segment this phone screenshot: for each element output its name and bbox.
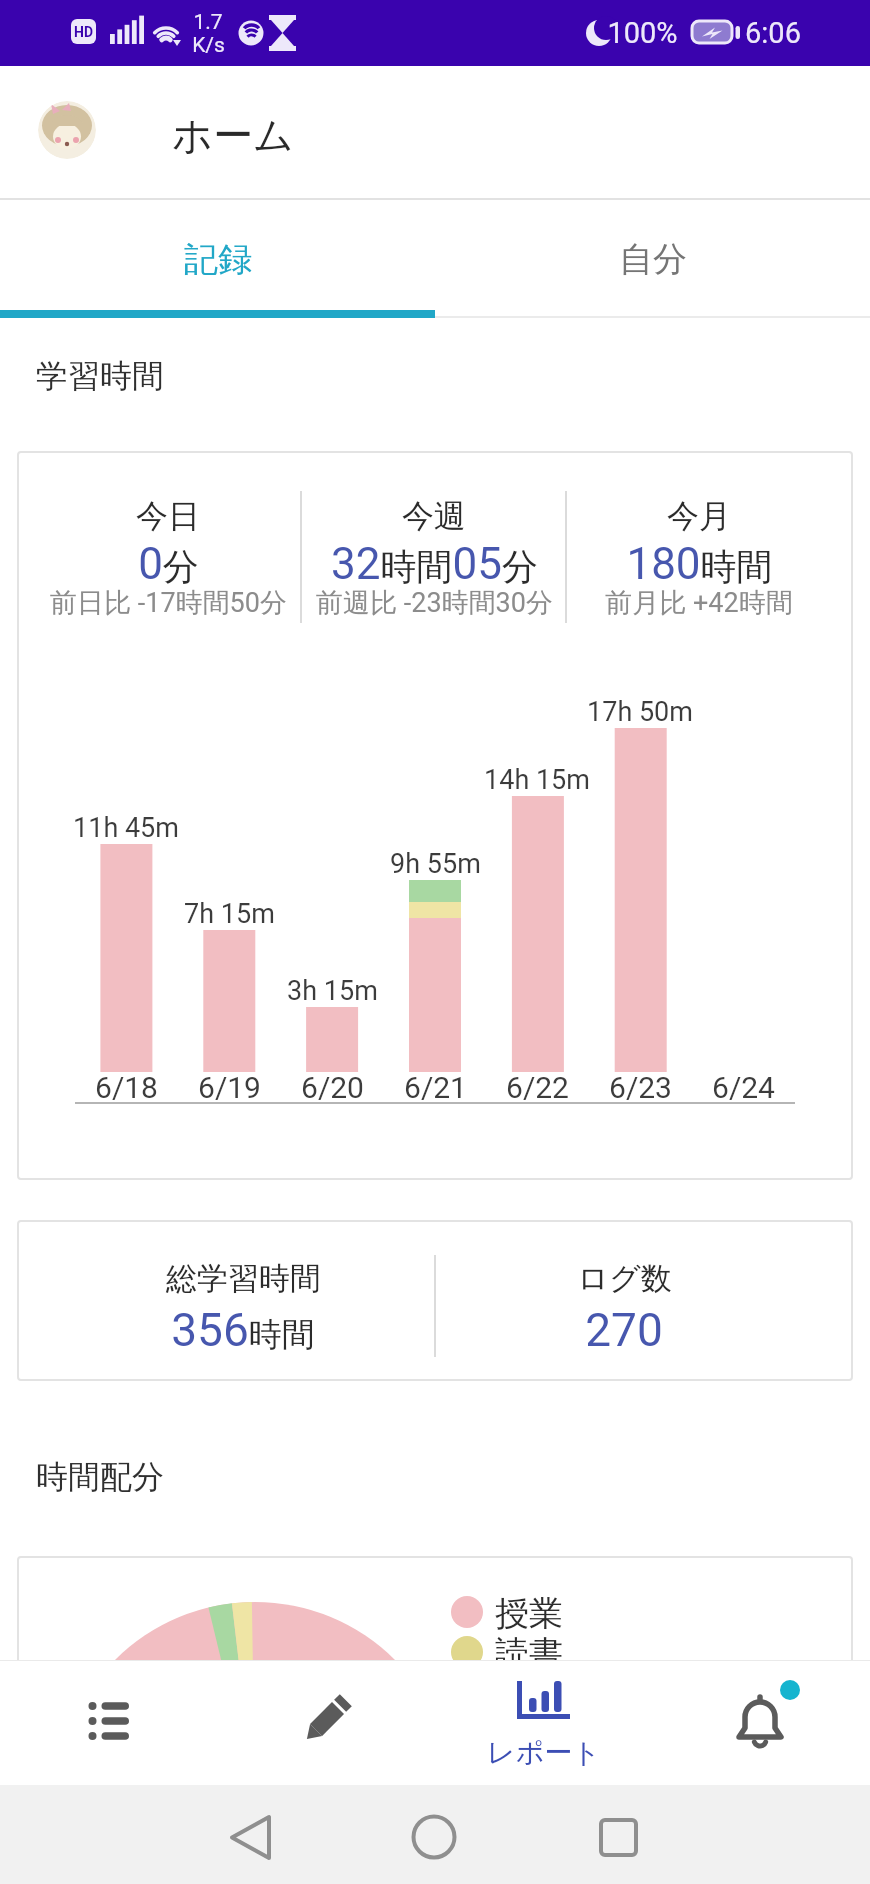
staticText: 授業 xyxy=(495,1592,563,1632)
staticText: 270 xyxy=(585,1303,663,1357)
staticText: 6/21 xyxy=(404,1070,467,1105)
staticText: K/s xyxy=(192,33,225,57)
button[interactable] xyxy=(0,1660,217,1785)
staticText: 前月比 +42時間 xyxy=(605,586,793,620)
staticText: 14h 15m xyxy=(484,764,590,796)
staticText: 180時間 xyxy=(626,538,773,590)
staticText: 学習時間 xyxy=(36,356,164,396)
staticText: 11h 45m xyxy=(73,812,179,844)
staticText: 6/23 xyxy=(609,1070,672,1105)
staticText: 記録 xyxy=(184,238,252,281)
staticText: 総学習時間 xyxy=(166,1259,321,1298)
staticText: 17h 50m xyxy=(587,696,693,728)
button[interactable] xyxy=(652,1660,870,1785)
staticText: 6/20 xyxy=(301,1070,364,1105)
staticText: 6/22 xyxy=(506,1070,569,1105)
staticText: 356時間 xyxy=(171,1303,315,1357)
staticText: 32時間05分 xyxy=(331,538,538,590)
staticText: 読書 xyxy=(495,1632,563,1672)
staticText: 今週 xyxy=(402,496,466,536)
staticText: 6/18 xyxy=(95,1070,158,1105)
staticText: 前週比 -23時間30分 xyxy=(316,586,553,620)
staticText: 1.7 xyxy=(193,10,223,34)
staticText: 今日 xyxy=(136,496,200,536)
button[interactable] xyxy=(217,1660,435,1785)
staticText: ログ数 xyxy=(577,1259,672,1298)
staticText: 3h 15m xyxy=(287,975,378,1007)
button[interactable]: 記録 xyxy=(0,200,435,318)
staticText: HD xyxy=(74,24,94,40)
button[interactable] xyxy=(345,1785,525,1884)
button[interactable]: レポート xyxy=(435,1660,653,1785)
staticText: レポート xyxy=(487,1735,601,1769)
staticText: 7h 15m xyxy=(184,898,275,930)
staticText: 6:06 xyxy=(745,16,801,50)
button[interactable]: 自分 xyxy=(435,200,870,318)
staticText: 6/24 xyxy=(712,1070,775,1105)
button[interactable] xyxy=(38,101,96,159)
staticText: 今月 xyxy=(667,496,731,536)
staticText: ホーム xyxy=(172,110,294,156)
staticText: 100% xyxy=(607,16,678,50)
staticText: 6/19 xyxy=(198,1070,261,1105)
staticText: 前日比 -17時間50分 xyxy=(50,586,287,620)
staticText: 0分 xyxy=(138,538,199,590)
button[interactable] xyxy=(530,1785,710,1884)
staticText: 9h 55m xyxy=(390,848,481,880)
staticText: 時間配分 xyxy=(36,1457,164,1497)
button[interactable] xyxy=(160,1785,340,1884)
staticText: 自分 xyxy=(619,238,687,281)
